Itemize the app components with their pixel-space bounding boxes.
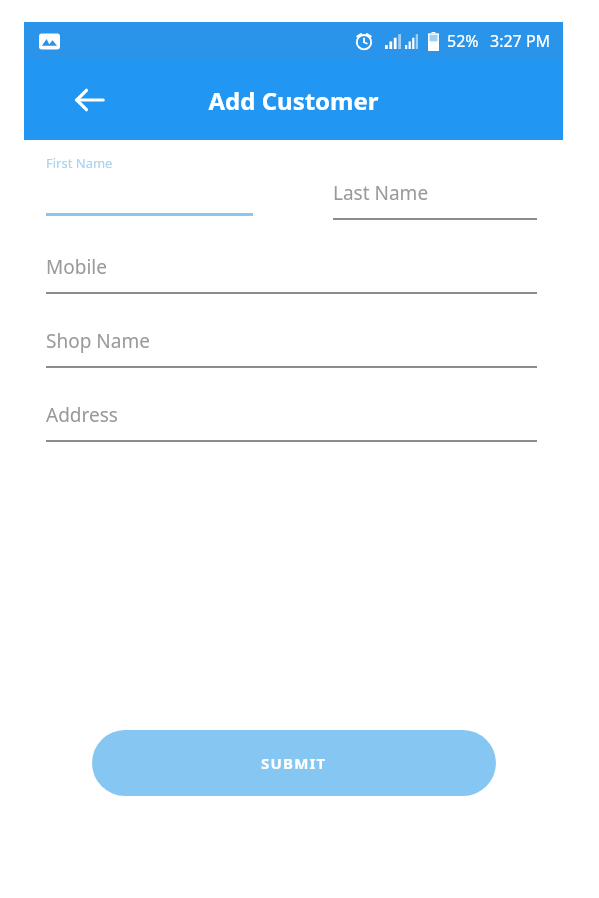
button[interactable] xyxy=(46,150,253,216)
other: Screenshot notification xyxy=(39,31,60,52)
button[interactable]: Shop Name xyxy=(46,328,537,372)
button[interactable]: Mobile xyxy=(46,254,537,298)
button[interactable]: SUBMIT xyxy=(92,730,496,796)
button[interactable]: Back xyxy=(68,78,112,122)
staticText: 3:27 PM xyxy=(490,30,551,52)
staticText: Address xyxy=(46,402,118,428)
staticText: Mobile xyxy=(46,254,107,280)
staticText: Last Name xyxy=(333,180,429,206)
staticText: 52% xyxy=(447,30,479,52)
button[interactable]: Address xyxy=(46,402,537,446)
staticText: SUBMIT xyxy=(261,753,327,773)
staticText: Add Customer xyxy=(208,84,379,117)
button[interactable]: Last Name xyxy=(333,180,537,224)
staticText: First Name xyxy=(46,154,113,172)
staticText: Shop Name xyxy=(46,328,150,354)
